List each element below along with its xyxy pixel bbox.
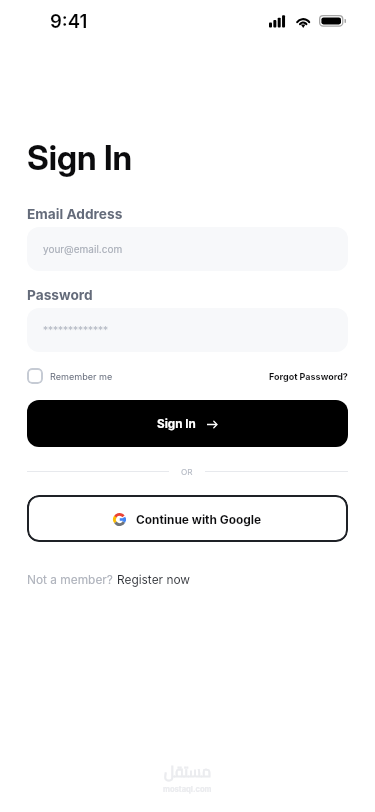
staticText: OR <box>181 467 193 477</box>
other: Wi-Fi <box>295 15 311 28</box>
staticText: mostaql.com <box>163 785 212 794</box>
staticText: Email Address <box>27 206 123 223</box>
button[interactable]: Not a member? <box>27 572 191 586</box>
staticText: Continue with Google <box>136 512 262 526</box>
staticText: Sign In <box>27 138 133 179</box>
staticText: 9:41 <box>50 10 88 32</box>
button[interactable]: Continue with Google <box>27 495 348 542</box>
staticText: Register now <box>117 572 191 586</box>
staticText: مستقل <box>164 757 212 785</box>
staticText: your@email.com <box>43 243 123 255</box>
button[interactable]: Forgot Password? <box>269 371 348 382</box>
button[interactable]: your@email.com <box>27 227 348 271</box>
staticText: Forgot Password? <box>269 371 348 382</box>
button[interactable]: Sign In <box>27 400 348 447</box>
button[interactable]: Remember me <box>27 368 113 384</box>
staticText: Password <box>27 287 93 304</box>
button[interactable]: ************* <box>27 308 348 352</box>
other: Cellular signal <box>269 15 289 28</box>
staticText: ************* <box>43 324 109 336</box>
other: Battery <box>319 15 347 28</box>
staticText: Sign In <box>157 417 196 431</box>
staticText: Not a member? <box>27 572 117 586</box>
staticText: Remember me <box>50 371 113 382</box>
